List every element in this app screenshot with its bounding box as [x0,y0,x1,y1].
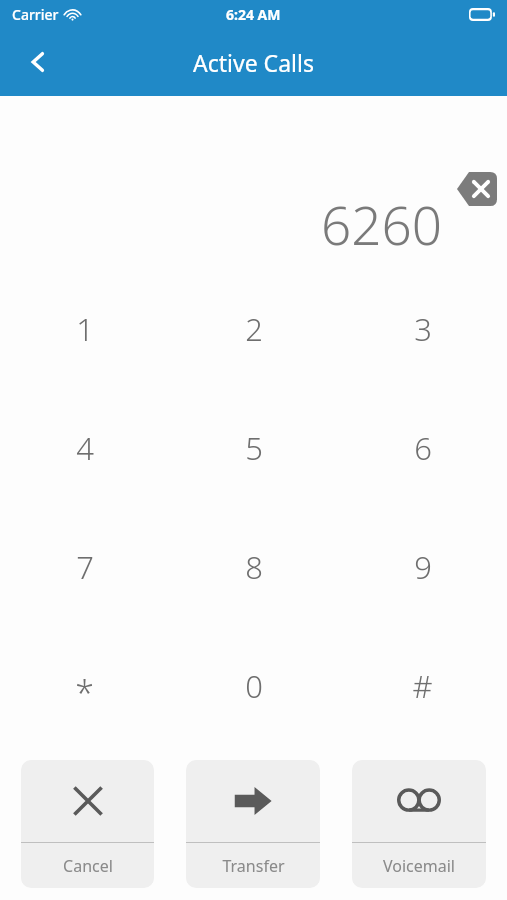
staticText: 2 [245,308,263,350]
button[interactable]: Delete [457,172,497,206]
staticText: 3 [414,308,432,350]
button[interactable]: 3 [338,269,507,388]
button[interactable]: 7 [0,507,169,626]
staticText: 6 [414,427,432,469]
button[interactable]: 0 [169,626,338,745]
staticText: Transfer [222,855,285,877]
staticText: * [75,670,94,716]
staticText: 1 [76,308,94,350]
button[interactable]: 8 [169,507,338,626]
staticText: Carrier [12,5,59,24]
staticText: Active Calls [193,47,314,78]
button[interactable]: # [338,626,507,745]
staticText: Voicemail [383,855,455,877]
staticText: Cancel [63,855,113,877]
button[interactable]: 1 [0,269,169,388]
button[interactable]: 5 [169,388,338,507]
button[interactable]: 4 [0,388,169,507]
staticText: 6260 [321,188,443,260]
staticText: 5 [245,427,263,469]
staticText: 6:24 AM [226,5,281,24]
button[interactable]: Back [14,38,62,86]
staticText: # [412,665,433,707]
button[interactable]: 9 [338,507,507,626]
staticText: 9 [414,546,432,588]
button[interactable]: Transfer [186,760,320,888]
staticText: 0 [245,665,263,707]
button[interactable]: * [0,626,169,745]
button[interactable]: Cancel [21,760,154,888]
staticText: 4 [76,427,94,469]
staticText: 8 [245,546,263,588]
button[interactable]: 2 [169,269,338,388]
button[interactable]: 6 [338,388,507,507]
button[interactable]: Voicemail [352,760,486,888]
staticText: 7 [76,546,94,588]
